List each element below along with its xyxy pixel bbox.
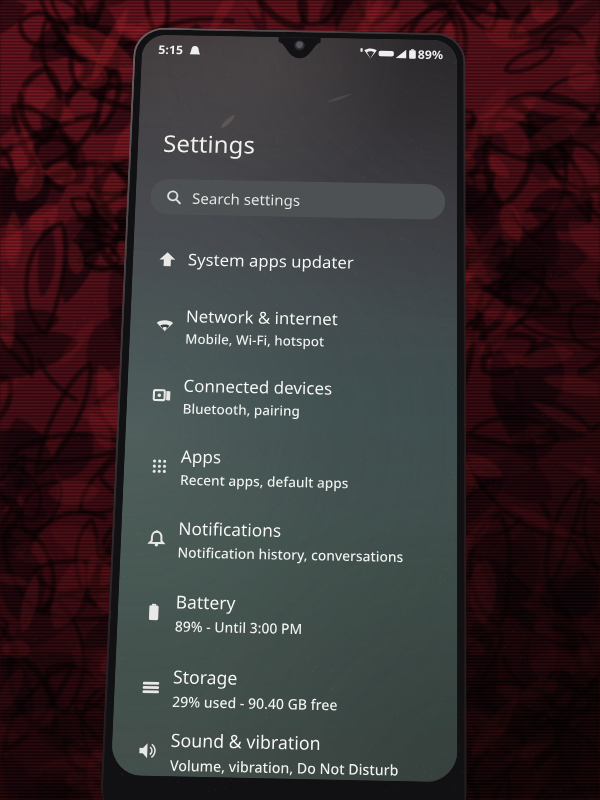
staticText: System apps updater <box>188 248 354 273</box>
staticText: Notifications <box>178 516 282 542</box>
staticText: Connected devices <box>183 374 333 400</box>
staticText: 5:15 <box>158 41 183 58</box>
button[interactable]: Network & internet <box>129 290 457 366</box>
button[interactable]: Apps <box>123 429 457 508</box>
button[interactable]: Storage <box>113 648 457 731</box>
staticText: 29% used - 90.40 GB free <box>172 692 338 715</box>
staticText: Settings <box>163 127 256 160</box>
button[interactable]: Battery <box>116 574 457 655</box>
staticText: Recent apps, default apps <box>180 471 349 492</box>
staticText: Storage <box>173 664 239 690</box>
staticText: Apps <box>181 444 222 468</box>
staticText: 89% <box>418 46 443 63</box>
staticText: Sound & vibration <box>170 727 321 755</box>
staticText: Volume, vibration, Do Not Disturb <box>170 756 399 780</box>
button[interactable]: Notifications <box>119 501 457 581</box>
button[interactable]: Connected devices <box>126 359 457 436</box>
staticText: Notification history, conversations <box>177 543 404 566</box>
staticText: Network & internet <box>186 305 338 330</box>
staticText: Search settings <box>192 188 300 210</box>
staticText: Mobile, Wi-Fi, hotspot <box>185 330 325 350</box>
button[interactable]: System apps updater <box>132 226 457 296</box>
staticText: Bluetooth, pairing <box>182 400 301 420</box>
button[interactable]: Search settings <box>150 179 445 220</box>
staticText: 89% - Until 3:00 PM <box>175 617 303 638</box>
button[interactable]: Sound & vibration <box>111 724 457 782</box>
staticText: Battery <box>175 590 237 615</box>
